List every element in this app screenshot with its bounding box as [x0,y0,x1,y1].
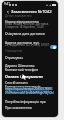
button[interactable]: Нова Пошта, експрес-доставка [2,22,58,26]
button[interactable]: Дарина Шевченко [2,63,58,67]
button[interactable]: Деталі замовлення [2,14,58,18]
staticText: Спосіб оплати [5,80,28,84]
button[interactable]: Електронна квитанція [2,84,58,88]
button[interactable]: Toggle notifications [50,45,57,49]
staticText: Отримувач [5,55,23,59]
staticText: Електронна квитанція [5,84,41,88]
button[interactable]: Отримувач [2,55,58,59]
staticText: Адреса доставки, вул. Хрещатик [5,40,55,44]
staticText: 9:41 [4,2,10,6]
staticText: Деталі замовлення [5,14,32,18]
staticText: Створено 14 березня, 12:40 [5,25,44,29]
button[interactable]: Про замовлення [2,105,58,109]
staticText: Контактний телефон [5,67,39,71]
button[interactable]: Сповіщення [2,49,58,53]
button[interactable]: Адреса доставки, вул. Хрещатик [2,40,58,44]
button[interactable]: 22, відділення №12, Київ, 01001 [2,43,58,47]
button[interactable]: Оплата і документи [2,74,58,79]
staticText: Дарина Шевченко [5,63,35,67]
button[interactable]: Спосіб оплати [2,80,58,84]
staticText: Сповіщення [5,49,23,53]
staticText: Нова Пошта, експрес-доставка [5,22,49,26]
staticText: Очікувана дата доставки [5,31,45,35]
staticText: Номер відправлення 204501789 [5,19,55,23]
staticText: Замовлення №1042 [11,9,52,15]
staticText: Оплата і документи [5,74,43,79]
button[interactable]: Потрібна інформація про товар [2,99,58,103]
button[interactable]: Номер відправлення 204501789 [2,19,58,23]
button[interactable]: Back [4,8,11,15]
staticText: https://np.ua/receipt/20450178903 [5,87,53,91]
staticText: 214?token=ab12cd34ef56gh78ij90kl [5,91,54,95]
staticText: Потрібна інформація про товар [5,99,55,103]
staticText: Про замовлення [5,105,32,109]
button[interactable]: Очікувана дата доставки [2,31,58,35]
staticText: 22, відділення №12, Київ, 01001 [5,43,50,47]
button[interactable]: Контактний телефон [2,67,58,71]
button[interactable]: Створено 14 березня, 12:40 [2,25,58,29]
